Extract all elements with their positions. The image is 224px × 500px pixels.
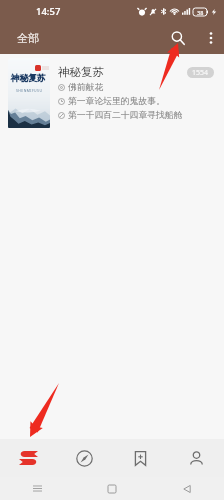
button[interactable]: Back: [149, 477, 224, 500]
button[interactable]: Bookshelf: [0, 439, 56, 477]
staticText: 38: [197, 9, 204, 16]
button[interactable]: Recents: [0, 477, 74, 500]
staticText: 第一千四百二十四章寻找船舱: [68, 110, 183, 121]
button[interactable]: Home: [74, 477, 149, 500]
staticText: 神秘复苏: [58, 65, 104, 79]
staticText: 神秘复苏: [11, 73, 46, 84]
button[interactable]: Search: [162, 22, 194, 54]
button[interactable]: Profile: [168, 439, 224, 477]
button[interactable]: More options: [196, 23, 224, 53]
button[interactable]: Discover: [56, 439, 112, 477]
button[interactable]: Bookmarks: [112, 439, 168, 477]
staticText: 佛前献花: [68, 82, 104, 93]
staticText: 14:57: [36, 5, 61, 18]
staticText: 1554: [192, 68, 209, 78]
staticText: 全部: [17, 31, 39, 45]
staticText: SHENMIFUSU: [16, 88, 43, 93]
staticText: 第一章论坛里的鬼故事。: [68, 96, 165, 107]
button[interactable]: 神秘复苏: [0, 54, 224, 132]
